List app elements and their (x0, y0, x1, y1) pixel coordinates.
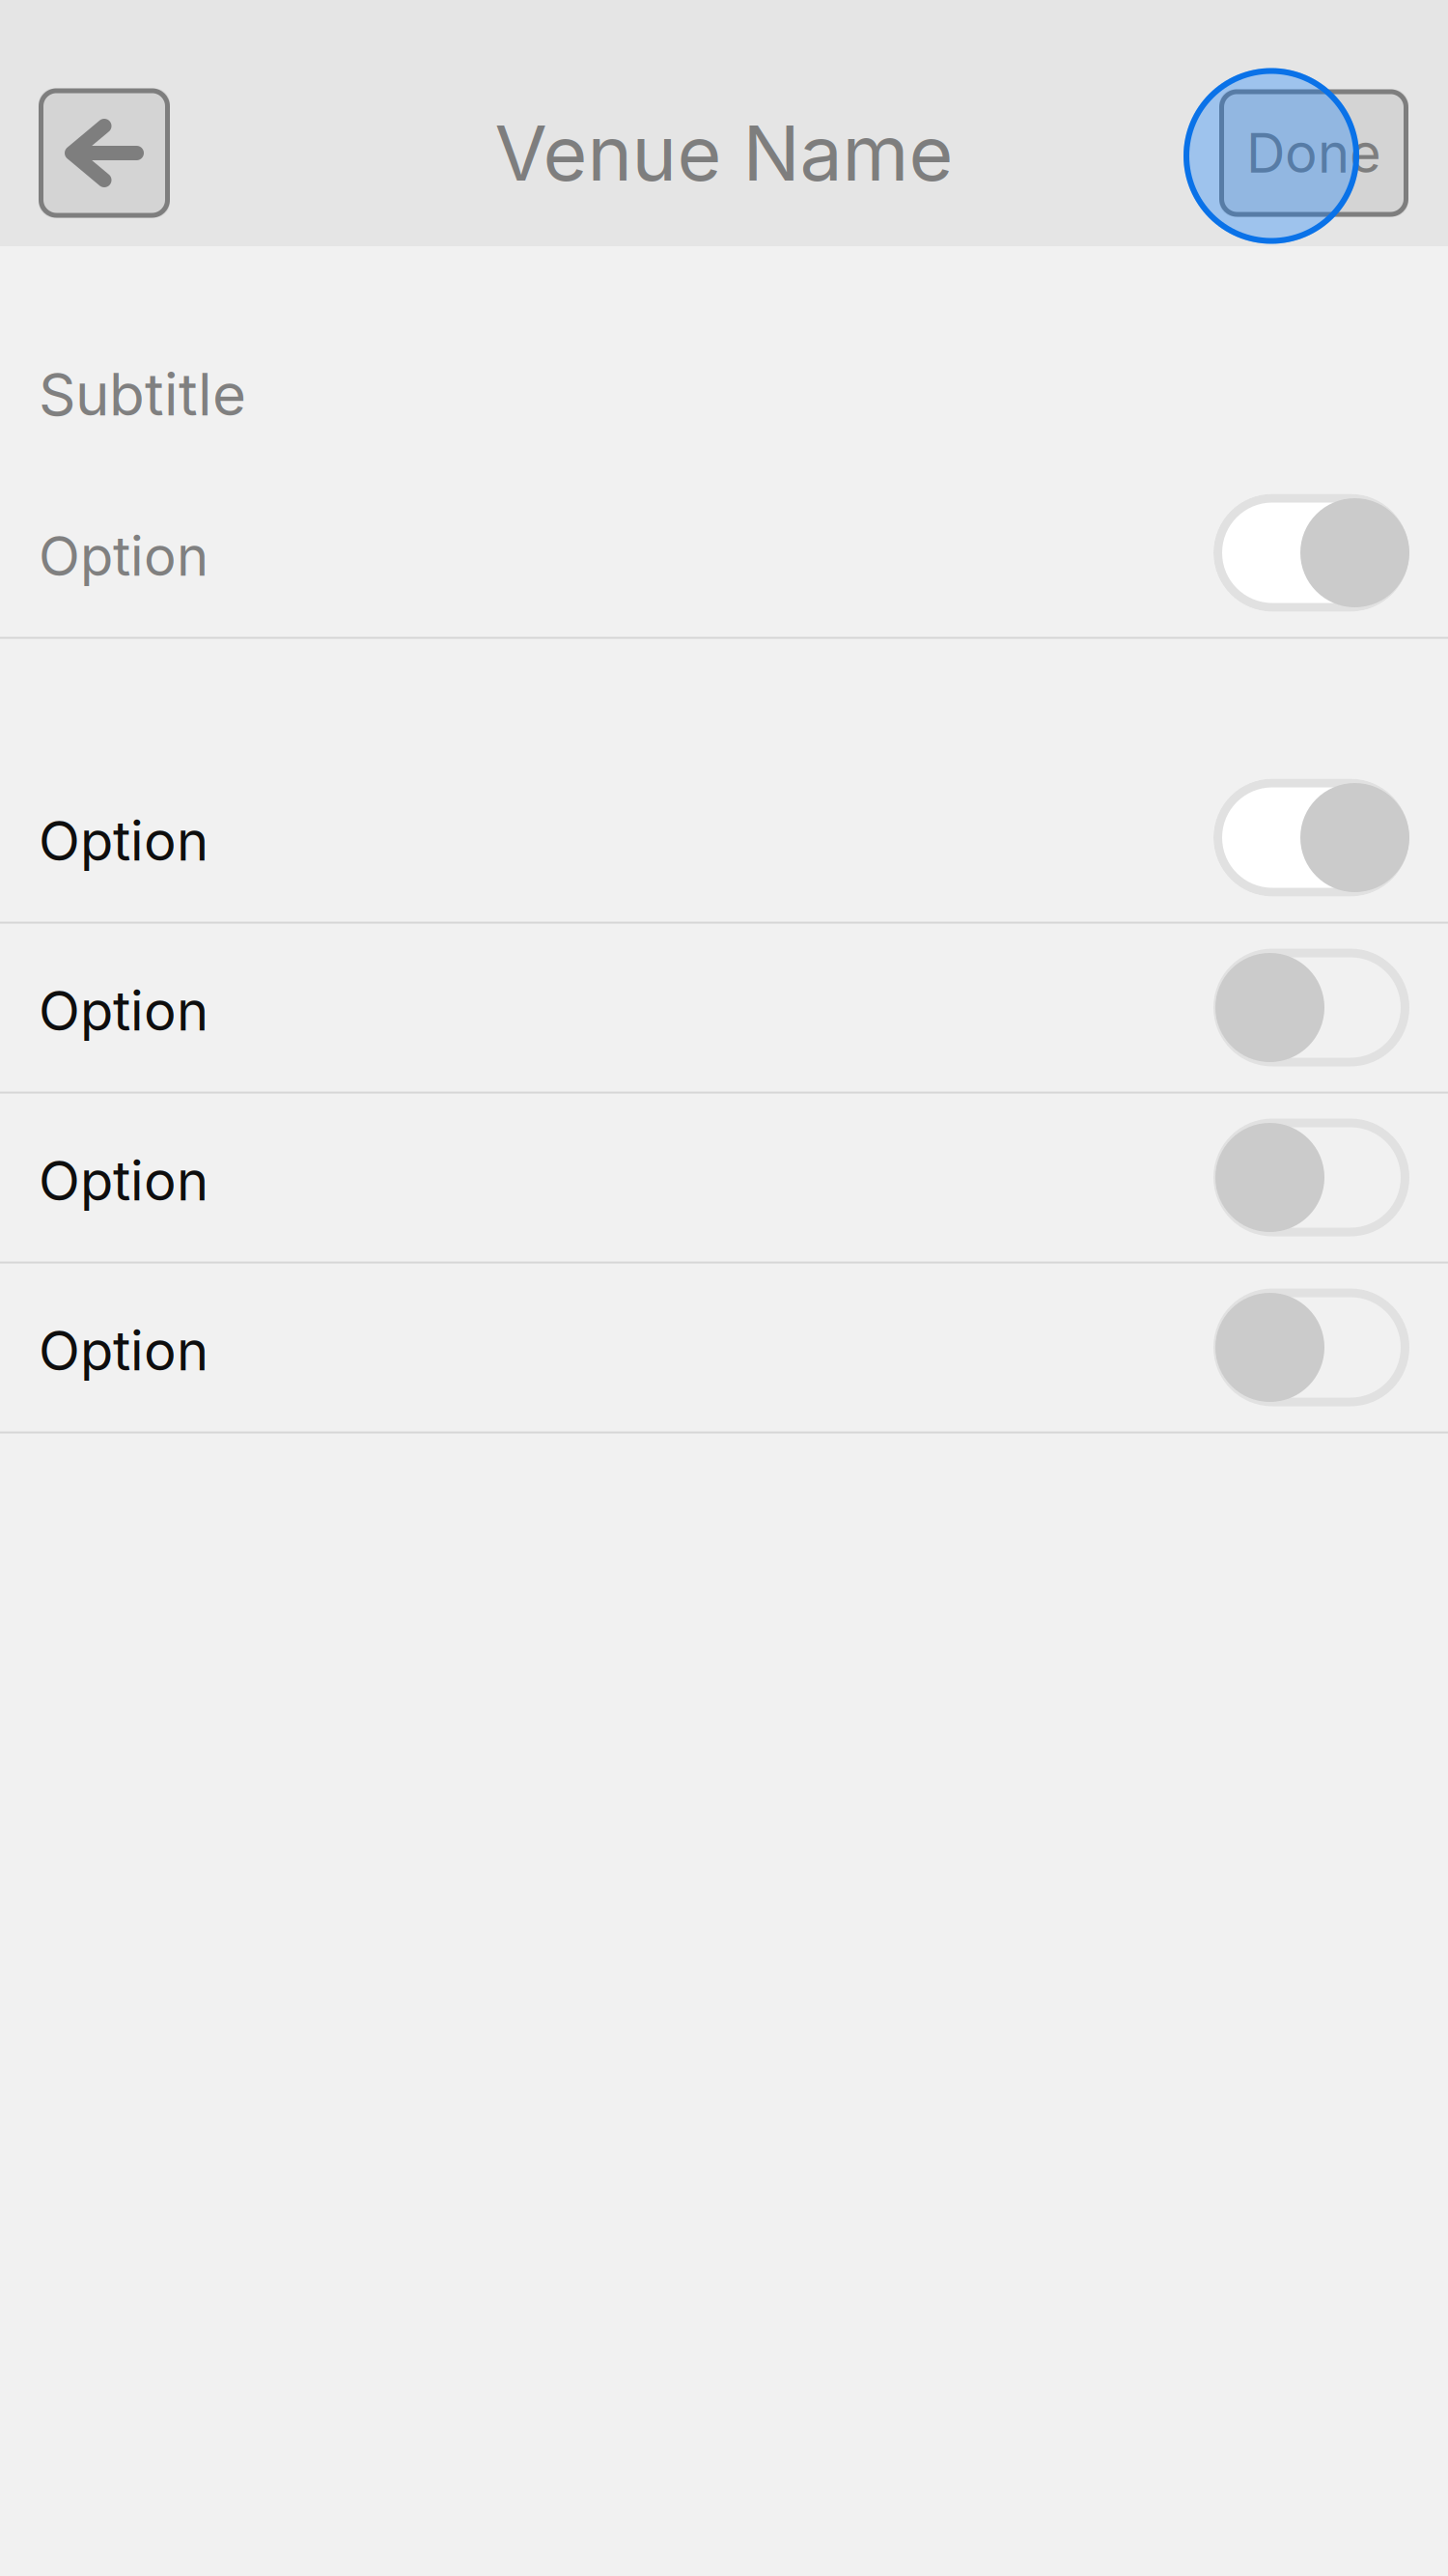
staticText: Venue Name (495, 107, 953, 199)
staticText: Subtitle (39, 359, 246, 429)
button[interactable]: Option (0, 754, 1448, 921)
button[interactable]: Option (0, 1264, 1448, 1431)
staticText: Option (39, 978, 209, 1044)
staticText: Option (39, 523, 209, 589)
staticText: Option (39, 808, 209, 874)
button[interactable]: Option (0, 1094, 1448, 1261)
button[interactable]: Back (39, 88, 170, 218)
staticText: Option (39, 1318, 209, 1383)
staticText: Option (39, 1148, 209, 1214)
button[interactable]: Done (1219, 89, 1408, 217)
staticText: Done (1246, 120, 1381, 186)
button[interactable]: Option (0, 924, 1448, 1091)
button[interactable]: Option (0, 469, 1448, 636)
